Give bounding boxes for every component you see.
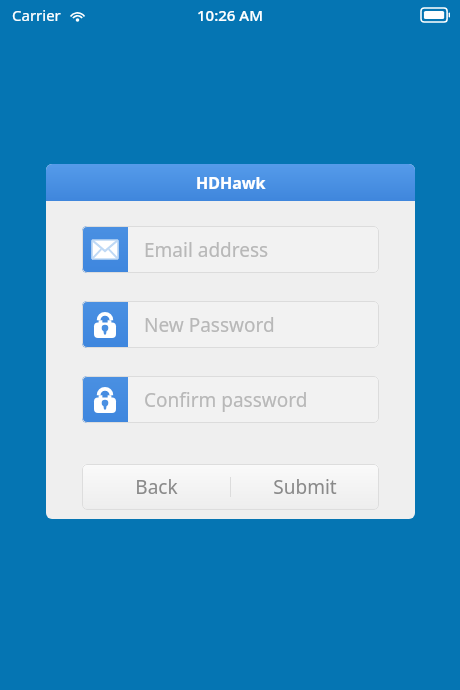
staticText: New Password — [144, 312, 275, 338]
staticText: Email address — [144, 237, 269, 263]
button[interactable]: Confirm password — [82, 376, 379, 423]
staticText: 10:26 AM — [197, 5, 263, 25]
staticText: HDHawk — [196, 172, 266, 194]
staticText: Confirm password — [144, 387, 308, 413]
button[interactable]: Email address — [82, 226, 379, 273]
staticText: Carrier — [12, 5, 61, 25]
button[interactable]: New Password — [82, 301, 379, 348]
staticText: Back — [135, 474, 178, 500]
button[interactable]: Back — [82, 464, 230, 510]
staticText: Submit — [273, 474, 337, 500]
button[interactable]: Submit — [230, 464, 379, 510]
